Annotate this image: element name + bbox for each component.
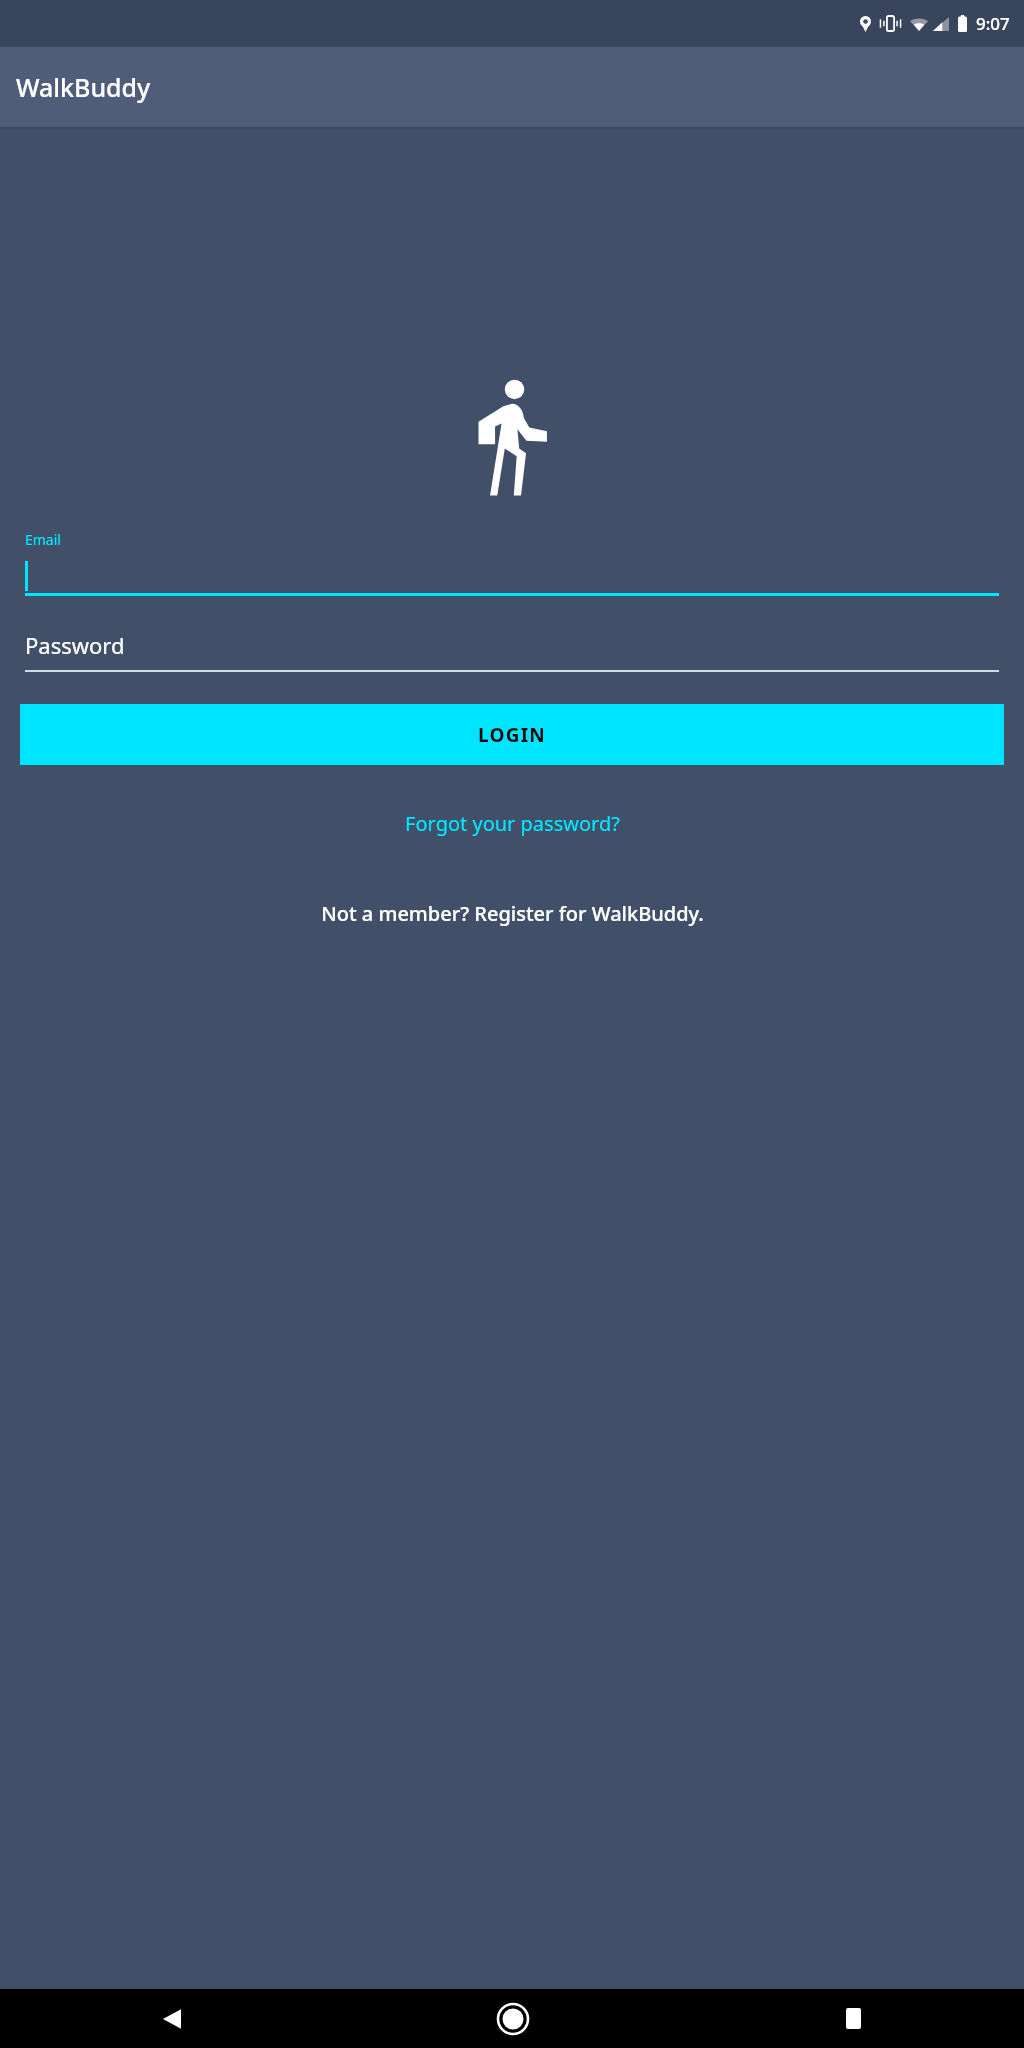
staticText: Email bbox=[25, 530, 61, 549]
staticText: WalkBuddy bbox=[16, 70, 151, 104]
button[interactable]: Password bbox=[25, 630, 999, 672]
staticText: Not a member? Register for WalkBuddy. bbox=[321, 900, 704, 927]
button[interactable]: Not a member? Register for WalkBuddy. bbox=[313, 892, 712, 935]
staticText: LOGIN bbox=[478, 722, 546, 748]
button[interactable] bbox=[25, 561, 999, 596]
staticText: 9:07 bbox=[976, 12, 1010, 35]
button[interactable]: Back bbox=[0, 1989, 342, 2048]
button[interactable]: LOGIN bbox=[20, 704, 1004, 765]
button[interactable]: Recent apps bbox=[683, 1989, 1024, 2048]
button[interactable]: Forgot your password? bbox=[397, 802, 628, 845]
staticText: Forgot your password? bbox=[405, 810, 620, 837]
staticText: Password bbox=[25, 630, 125, 660]
button[interactable]: Home bbox=[342, 1989, 683, 2048]
